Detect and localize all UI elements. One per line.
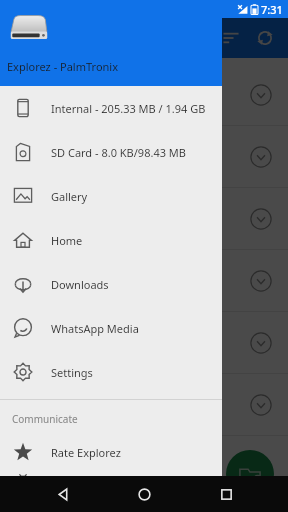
button[interactable]: 5/21/17	[0, 312, 288, 374]
button[interactable]: Gallery	[0, 174, 222, 218]
button[interactable]: Expand	[248, 454, 274, 480]
button[interactable]: 5/21/17	[0, 374, 288, 436]
button[interactable]: Expand	[248, 206, 274, 232]
staticText: Rate Explorez	[51, 445, 121, 460]
button[interactable]: Expand	[248, 82, 274, 108]
button[interactable]: Settings	[0, 350, 222, 394]
button[interactable]: Expand	[248, 392, 274, 418]
button[interactable]: Recents	[206, 476, 246, 512]
staticText: 5/21/17	[14, 412, 51, 426]
staticText: Downloads	[51, 277, 109, 292]
button[interactable]: Sort	[214, 21, 248, 55]
staticText: Communicate	[12, 412, 78, 426]
button[interactable]: 5/21/17	[0, 126, 288, 188]
staticText: 5/21/17	[14, 350, 51, 364]
button[interactable]: Expand	[248, 330, 274, 356]
button[interactable]: Expand	[248, 144, 274, 170]
button[interactable]: Back	[42, 476, 82, 512]
button[interactable]: 5/21/17	[0, 250, 288, 312]
button[interactable]: Report Bug	[0, 474, 222, 476]
button[interactable]: Home	[124, 476, 164, 512]
button[interactable]: 5/21/17	[0, 498, 288, 512]
staticText: Internal - 205.33 MB / 1.94 GB	[51, 101, 206, 116]
button[interactable]: New folder	[226, 450, 274, 498]
staticText: Explorez - PalmTronix	[7, 59, 118, 74]
staticText: SD Card - 8.0 KB/98.43 MB	[51, 145, 186, 160]
staticText: 7:31	[261, 2, 283, 17]
staticText: Settings	[51, 365, 93, 380]
staticText: 5/22/17	[14, 102, 51, 116]
button[interactable]: Internal - 205.33 MB / 1.94 GB	[0, 86, 222, 130]
staticText: 5/21/17	[14, 474, 51, 488]
button[interactable]: SD Card - 8.0 KB/98.43 MB	[0, 130, 222, 174]
staticText: Gallery	[51, 189, 88, 204]
staticText: Home	[51, 233, 83, 248]
button[interactable]: WhatsApp Media	[0, 306, 222, 350]
button[interactable]: 5/21/17	[0, 188, 288, 250]
staticText: 5/21/17	[14, 288, 51, 302]
button[interactable]: Home	[0, 218, 222, 262]
button[interactable]: Rate Explorez	[0, 430, 222, 474]
button[interactable]: 5/22/17	[0, 64, 288, 126]
staticText: WhatsApp Media	[51, 321, 139, 336]
button[interactable]: 5/21/17	[0, 436, 288, 498]
button[interactable]: Expand	[248, 268, 274, 294]
button[interactable]: Downloads	[0, 262, 222, 306]
button[interactable]: Refresh	[248, 21, 282, 55]
staticText: 5/21/17	[14, 226, 51, 240]
